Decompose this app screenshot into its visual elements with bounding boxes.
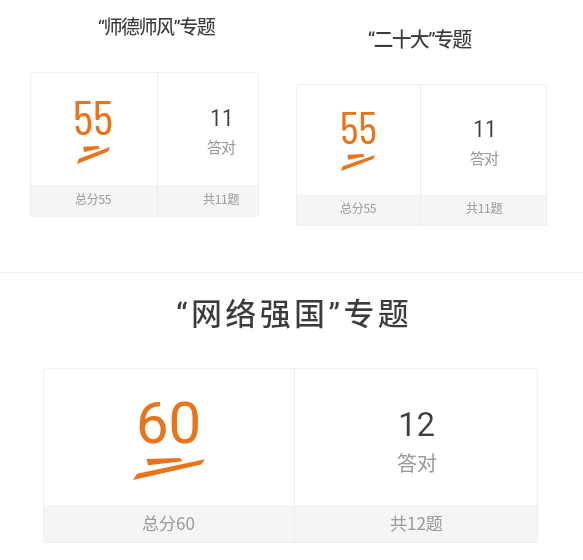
staticText: 答对 [397, 448, 437, 477]
staticText: “师德师风”专题 [42, 12, 270, 40]
other: Score mark [133, 458, 205, 480]
staticText: 答对 [207, 136, 236, 158]
staticText: “二十大”专题 [294, 24, 544, 53]
staticText: 60 [136, 389, 202, 457]
button[interactable]: 55 [30, 72, 259, 217]
staticText: 总分55 [340, 199, 377, 216]
staticText: 11 [210, 104, 234, 132]
staticText: 总分55 [75, 190, 112, 207]
button[interactable]: 55 [296, 84, 547, 226]
staticText: 12 [398, 405, 436, 444]
staticText: 共11题 [203, 190, 240, 207]
other: Score mark [77, 146, 110, 164]
button[interactable]: 60 [43, 368, 538, 543]
staticText: 55 [340, 99, 377, 153]
staticText: 55 [73, 86, 114, 145]
staticText: 共12题 [390, 510, 443, 535]
staticText: “网络强国”专题 [47, 289, 541, 334]
staticText: 总分60 [142, 510, 195, 535]
other: Score mark [341, 154, 375, 171]
staticText: 共11题 [466, 199, 503, 216]
staticText: 答对 [470, 147, 499, 169]
staticText: 11 [473, 115, 497, 143]
